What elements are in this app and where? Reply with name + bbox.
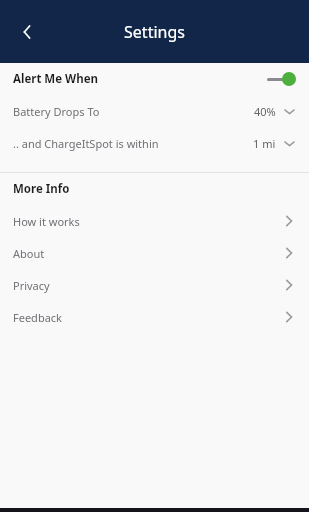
button[interactable]: Battery Drops To — [0, 95, 309, 127]
button[interactable]: Alert Me When — [0, 63, 309, 95]
button[interactable]: Back — [6, 10, 50, 54]
staticText: 1 mi — [253, 136, 276, 151]
staticText: About — [13, 246, 45, 261]
staticText: Alert Me When — [13, 71, 99, 87]
button[interactable]: Privacy — [0, 269, 309, 301]
button[interactable]: Feedback — [0, 301, 309, 333]
staticText: 40% — [254, 104, 276, 119]
staticText: Feedback — [13, 310, 62, 325]
staticText: More Info — [13, 181, 70, 197]
staticText: .. and ChargeItSpot is within — [13, 136, 159, 151]
button[interactable]: About — [0, 237, 309, 269]
staticText: Settings — [124, 21, 185, 43]
button[interactable]: How it works — [0, 205, 309, 237]
button[interactable]: .. and ChargeItSpot is within — [0, 127, 309, 159]
staticText: Battery Drops To — [13, 104, 100, 119]
staticText: How it works — [13, 214, 80, 229]
button[interactable]: Alert Me When toggle — [266, 71, 296, 87]
staticText: Privacy — [13, 278, 50, 293]
